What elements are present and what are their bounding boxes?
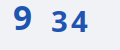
staticText: 3 [51, 1, 68, 40]
staticText: 9 [13, 0, 32, 39]
staticText: 4 [71, 1, 88, 40]
